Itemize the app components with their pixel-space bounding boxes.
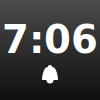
button[interactable]: Alarm 7:06	[0, 0, 100, 100]
staticText: 7:06	[2, 17, 98, 62]
